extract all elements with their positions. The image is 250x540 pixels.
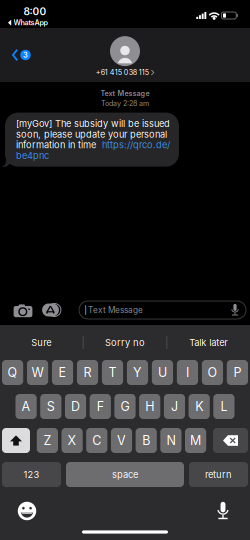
staticText: +61 415 038 115 xyxy=(96,68,149,77)
staticText: H xyxy=(145,399,154,414)
button[interactable]: Z xyxy=(37,428,58,453)
button[interactable]: Delete xyxy=(213,428,248,453)
staticText: N xyxy=(166,433,175,448)
button[interactable]: O xyxy=(202,360,223,385)
button[interactable]: Talk later xyxy=(167,325,250,360)
button[interactable]: S xyxy=(40,394,61,419)
staticText: 3 xyxy=(23,50,28,59)
staticText: M xyxy=(190,433,201,448)
button[interactable]: C xyxy=(86,428,107,453)
staticText: Q xyxy=(8,365,18,380)
button[interactable]: M xyxy=(185,428,206,453)
staticText: soon, please update your personal xyxy=(16,129,167,140)
button[interactable]: 123 xyxy=(2,462,61,487)
staticText: S xyxy=(47,399,55,414)
button[interactable]: App Store xyxy=(37,297,64,322)
button[interactable]: J xyxy=(164,394,185,419)
staticText: O xyxy=(207,365,217,380)
staticText: W xyxy=(32,365,44,380)
staticText: U xyxy=(158,365,167,380)
button[interactable]: Q xyxy=(2,360,23,385)
staticText: P xyxy=(233,365,241,380)
staticText: 8:00 xyxy=(23,5,46,18)
button[interactable]: V xyxy=(111,428,132,453)
button[interactable]: H xyxy=(139,394,160,419)
staticText: D xyxy=(71,399,80,414)
button[interactable]: Dictation xyxy=(207,498,239,524)
staticText: Z xyxy=(43,433,51,448)
button[interactable]: space xyxy=(66,462,184,487)
staticText: Today 2:28 am xyxy=(101,99,149,108)
button[interactable]: X xyxy=(61,428,83,453)
staticText: J xyxy=(171,399,178,414)
staticText: Text Message xyxy=(88,305,143,315)
staticText: Sure xyxy=(31,337,51,348)
staticText: T xyxy=(108,365,116,380)
button[interactable]: A xyxy=(15,394,37,419)
staticText: C xyxy=(92,433,101,448)
staticText: Talk later xyxy=(189,337,228,348)
staticText: Y xyxy=(133,365,142,380)
staticText: G xyxy=(120,399,129,414)
button[interactable]: Y xyxy=(127,360,148,385)
button[interactable]: Sorry no xyxy=(84,325,166,360)
button[interactable]: Emoji xyxy=(11,498,43,524)
staticText: E xyxy=(59,365,67,380)
button[interactable]: N xyxy=(160,428,181,453)
staticText: Sorry no xyxy=(105,337,145,348)
button[interactable]: I xyxy=(177,360,198,385)
staticText: R xyxy=(83,365,91,380)
staticText: [myGov] The subsidy will be issued xyxy=(16,118,170,129)
button[interactable]: P xyxy=(227,360,248,385)
button[interactable]: U xyxy=(152,360,173,385)
staticText: be4pnc xyxy=(16,150,49,161)
staticText: WhatsApp xyxy=(14,18,48,27)
staticText: A xyxy=(22,399,31,414)
staticText: information in time xyxy=(16,139,96,150)
button[interactable]: Sure xyxy=(0,325,83,360)
button[interactable]: Back xyxy=(0,40,39,70)
staticText: Text Message xyxy=(100,89,149,98)
button[interactable]: D xyxy=(65,394,86,419)
button[interactable]: R xyxy=(77,360,98,385)
staticText: I xyxy=(186,365,189,380)
button[interactable]: L xyxy=(213,394,234,419)
button[interactable]: G xyxy=(114,394,136,419)
button[interactable]: T xyxy=(102,360,123,385)
staticText: B xyxy=(142,433,150,448)
staticText: space xyxy=(112,469,138,480)
staticText: F xyxy=(97,399,104,414)
button[interactable]: return xyxy=(189,462,248,487)
button[interactable]: E xyxy=(52,360,73,385)
staticText: return xyxy=(205,469,232,480)
staticText: 123 xyxy=(23,469,39,480)
staticText: https://qrco.de/ xyxy=(96,139,170,150)
staticText: L xyxy=(220,399,227,414)
staticText: V xyxy=(117,433,126,448)
button[interactable]: F xyxy=(90,394,111,419)
button[interactable]: Shift xyxy=(2,428,30,453)
button[interactable]: Camera xyxy=(9,297,37,322)
staticText: X xyxy=(68,433,77,448)
button[interactable]: K xyxy=(189,394,210,419)
staticText: K xyxy=(195,399,203,414)
button[interactable]: B xyxy=(136,428,157,453)
button[interactable]: W xyxy=(27,360,48,385)
